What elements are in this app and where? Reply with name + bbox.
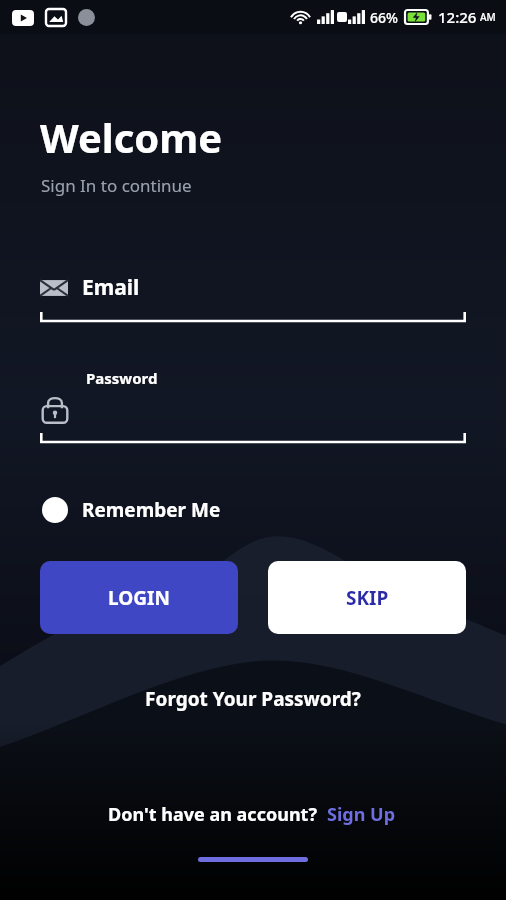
staticText: Password bbox=[86, 368, 158, 388]
staticText: Welcome bbox=[40, 110, 223, 164]
button[interactable]: Remember Me bbox=[40, 493, 223, 527]
staticText: SKIP bbox=[346, 585, 389, 611]
staticText: LOGIN bbox=[108, 585, 170, 611]
staticText: Don't have an account? bbox=[108, 802, 317, 827]
staticText: Email bbox=[82, 273, 140, 302]
button[interactable]: Forgot Your Password? bbox=[135, 682, 371, 716]
staticText: 66% bbox=[370, 8, 398, 27]
button[interactable]: Email bbox=[40, 273, 466, 324]
staticText: Remember Me bbox=[82, 497, 221, 523]
button[interactable]: Sign Up bbox=[325, 800, 398, 829]
staticText: Sign In to continue bbox=[41, 174, 192, 197]
staticText: AM bbox=[480, 10, 496, 24]
button[interactable]: LOGIN bbox=[40, 561, 238, 634]
button[interactable]: Password bbox=[40, 368, 466, 445]
staticText: 12:26 bbox=[438, 7, 477, 27]
button[interactable]: SKIP bbox=[268, 561, 466, 634]
